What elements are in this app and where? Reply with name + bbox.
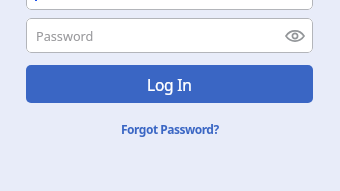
button[interactable]: Forgot Password? [113,116,227,142]
button[interactable]: Password [26,18,313,53]
button[interactable]: Log In [26,65,313,103]
staticText: Forgot Password? [121,121,219,137]
staticText: Log In [147,74,192,95]
staticText: Password [36,27,94,44]
button[interactable]: Show password [283,24,307,48]
button[interactable] [26,0,313,10]
